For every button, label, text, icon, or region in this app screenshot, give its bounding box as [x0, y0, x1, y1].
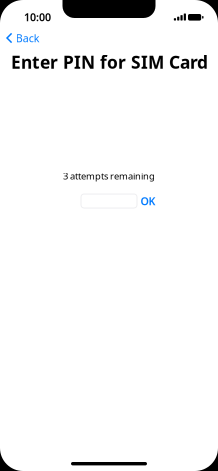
button[interactable]: Back	[0, 29, 48, 47]
staticText: OK	[140, 194, 155, 208]
button[interactable]: OK	[138, 194, 158, 208]
button[interactable]: PIN	[81, 194, 137, 208]
staticText: Enter PIN for SIM Card	[11, 50, 208, 73]
staticText: Back	[16, 31, 40, 45]
staticText: 10:00	[24, 10, 51, 24]
staticText: 3 attempts remaining	[63, 170, 155, 182]
